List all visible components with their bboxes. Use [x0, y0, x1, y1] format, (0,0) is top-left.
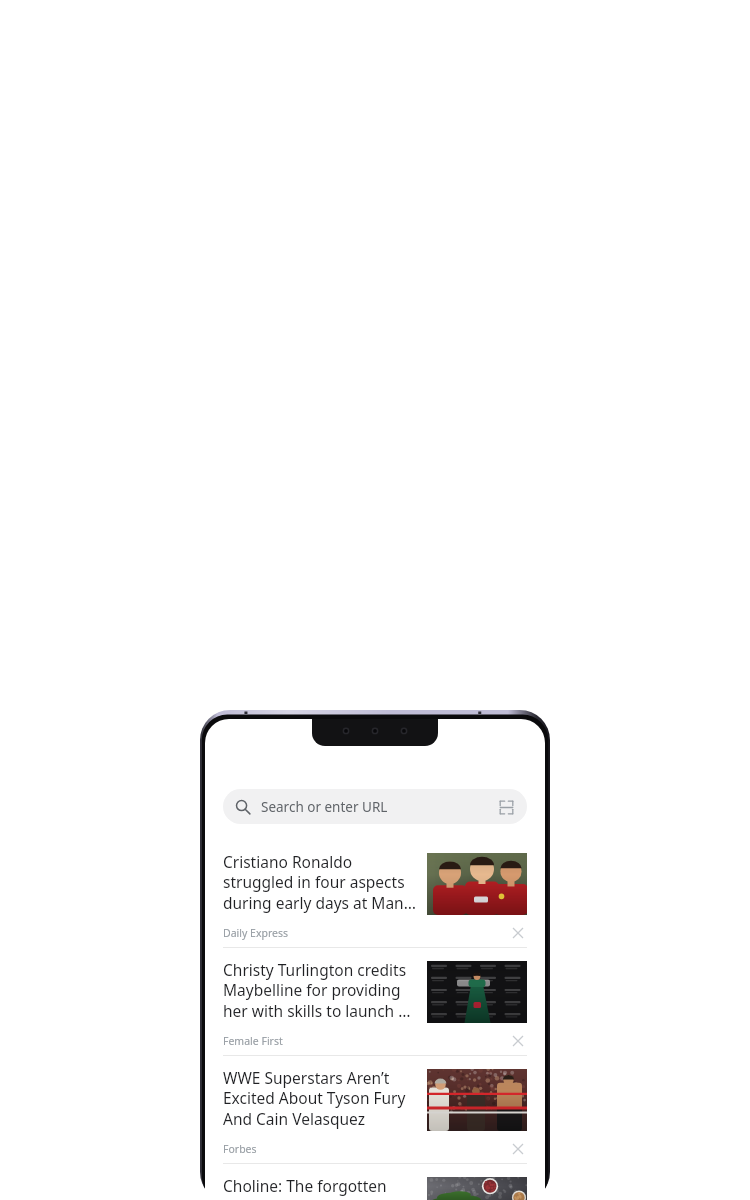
staticText: Forbes [223, 1142, 509, 1156]
button[interactable]: Search or enter URL [223, 789, 527, 824]
button[interactable]: Choline: The forgotten vital nutrient yo… [205, 1164, 545, 1200]
button[interactable]: Dismiss Daily Express story [509, 924, 527, 942]
button[interactable]: Dismiss Female First story [509, 1032, 527, 1050]
staticText: Christy Turlington credits Maybelline fo… [223, 959, 417, 1022]
staticText: Female First [223, 1034, 509, 1048]
staticText: Choline: The forgotten vital nutrient yo… [223, 1175, 417, 1200]
button[interactable]: WWE Superstars Aren’t Excited About Tyso… [205, 1056, 545, 1163]
button[interactable]: Scan QR code [496, 797, 516, 817]
button[interactable]: Christy Turlington credits Maybelline fo… [205, 948, 545, 1055]
staticText: Cristiano Ronaldo struggled in four aspe… [223, 851, 417, 914]
staticText: WWE Superstars Aren’t Excited About Tyso… [223, 1067, 417, 1130]
button[interactable]: Dismiss Forbes story [509, 1140, 527, 1158]
staticText: Daily Express [223, 926, 509, 940]
staticText: Search or enter URL [261, 798, 496, 816]
button[interactable]: Cristiano Ronaldo struggled in four aspe… [205, 840, 545, 947]
